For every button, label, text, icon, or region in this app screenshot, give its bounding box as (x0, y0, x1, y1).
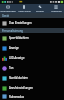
staticText: Konten (36, 10, 44, 13)
button[interactable]: Ruhemodus (0, 93, 64, 100)
button[interactable]: Ton (0, 63, 64, 73)
button[interactable]: Duo Einstellungen (0, 18, 64, 28)
button[interactable]: Mein Gerät (16, 4, 32, 13)
staticText: Anrufeinstellungen (9, 86, 33, 90)
staticText: Mein Gerät (18, 10, 31, 13)
staticText: Anzeige (9, 46, 19, 50)
staticText: Startbildschirm (9, 76, 29, 80)
staticText: Personalisierung (2, 29, 23, 33)
button[interactable]: Anzeige (0, 43, 64, 53)
button[interactable]: Verbindungen (0, 4, 16, 13)
staticText: Ton (9, 66, 14, 70)
staticText: Verbindungen (0, 10, 16, 13)
button[interactable]: Anrufeinstellungen (0, 83, 64, 93)
staticText: LED-Anzeige (9, 56, 25, 60)
staticText: Ruhemodus (9, 95, 24, 99)
staticText: Optionen (51, 10, 62, 13)
button[interactable]: Optionen (48, 4, 64, 13)
staticText: Gerät (2, 14, 9, 18)
button[interactable]: Konten (32, 4, 48, 13)
button[interactable]: LED-Anzeige (0, 53, 64, 63)
staticText: Duo Einstellungen (9, 21, 32, 25)
button[interactable]: Startbildschirm (0, 73, 64, 83)
button[interactable]: Sperrbildschirm (0, 33, 64, 43)
staticText: Sperrbildschirm (9, 36, 29, 40)
